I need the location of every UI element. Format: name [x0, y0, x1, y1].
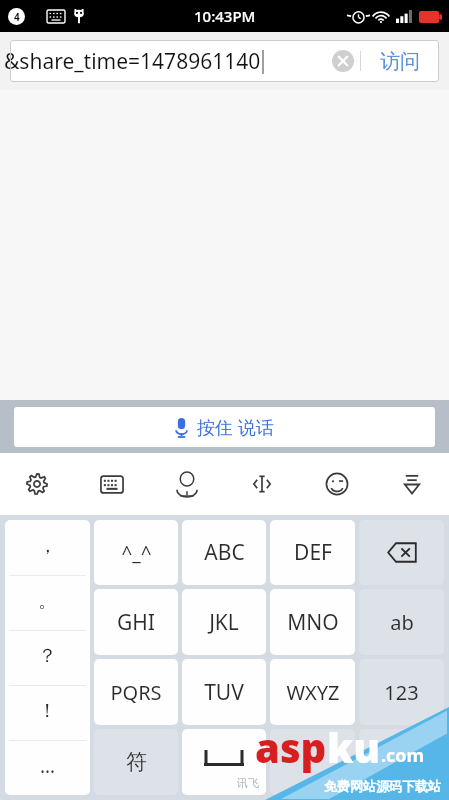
staticText: … — [40, 753, 56, 779]
button[interactable]: ABC — [182, 520, 266, 585]
staticText: MNO — [287, 608, 339, 637]
button[interactable]: Hide keyboard — [374, 453, 449, 515]
button[interactable] — [270, 729, 355, 795]
staticText: asp — [255, 720, 327, 774]
button[interactable]: Settings — [0, 453, 74, 515]
button[interactable]: WXYZ — [270, 659, 355, 725]
staticText: ABC — [204, 538, 245, 567]
button[interactable]: Clear text — [326, 44, 360, 78]
button[interactable]: ！ — [5, 686, 90, 740]
button[interactable]: 按住 说话 — [14, 407, 435, 447]
staticText: 4 — [14, 10, 20, 24]
button[interactable]: &share_time=1478961140 — [10, 40, 326, 82]
staticText: 10:43PM — [194, 6, 256, 26]
button[interactable]: … — [5, 741, 90, 795]
staticText: WXYZ — [286, 679, 340, 706]
button[interactable]: 符 — [94, 729, 178, 795]
button[interactable]: MNO — [270, 589, 355, 655]
staticText: ？ — [38, 644, 57, 668]
button[interactable]: ， — [5, 520, 90, 575]
button[interactable]: ？ — [5, 631, 90, 685]
staticText: TUV — [204, 678, 244, 707]
button[interactable]: TUV — [182, 659, 266, 725]
button[interactable]: Emoji — [299, 453, 374, 515]
button[interactable]: PQRS — [94, 659, 178, 725]
staticText: JKL — [209, 608, 239, 637]
button[interactable]: Space — [182, 729, 266, 795]
button[interactable]: DEF — [270, 520, 355, 585]
staticText: 123 — [384, 679, 419, 706]
staticText: GHI — [117, 608, 155, 637]
staticText: ！ — [38, 699, 57, 723]
staticText: 访问 — [380, 49, 420, 74]
button[interactable]: Voice input — [149, 453, 224, 515]
button[interactable]: ab — [359, 589, 444, 655]
staticText: DEF — [294, 538, 332, 567]
button[interactable]: 。 — [5, 576, 90, 630]
button[interactable]: Backspace — [359, 520, 444, 585]
staticText: ku — [327, 720, 381, 774]
staticText: 。 — [38, 589, 57, 613]
staticText: ab — [390, 609, 414, 636]
staticText: 符 — [126, 749, 147, 775]
staticText: &share_time=1478961140 — [4, 47, 261, 76]
staticText: .com — [381, 743, 425, 768]
button[interactable]: Keyboard layout — [74, 453, 149, 515]
button[interactable]: GHI — [94, 589, 178, 655]
button[interactable]: ^_^ — [94, 520, 178, 585]
button[interactable]: Move cursor — [224, 453, 299, 515]
staticText: 免费网站源码下载站 — [324, 778, 441, 794]
button[interactable]: 访问 — [361, 40, 439, 82]
staticText: ^_^ — [121, 540, 152, 566]
button[interactable]: JKL — [182, 589, 266, 655]
staticText: 讯飞 — [237, 776, 259, 790]
button[interactable]: 123 — [359, 659, 444, 725]
staticText: PQRS — [110, 679, 162, 706]
staticText: 按住 说话 — [197, 415, 274, 440]
button[interactable] — [359, 729, 444, 795]
staticText: ， — [38, 534, 57, 558]
